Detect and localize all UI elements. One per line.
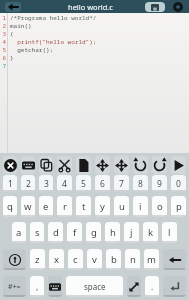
staticText: h bbox=[110, 226, 116, 239]
staticText: #+= bbox=[8, 282, 21, 292]
button[interactable] bbox=[171, 156, 186, 174]
button[interactable] bbox=[21, 156, 35, 174]
button[interactable] bbox=[152, 156, 167, 174]
staticText: k bbox=[148, 226, 154, 239]
staticText: 4 bbox=[0, 38, 6, 46]
button[interactable] bbox=[127, 276, 141, 297]
staticText: 7 bbox=[0, 62, 6, 70]
button[interactable]: 7 bbox=[114, 175, 129, 192]
staticText: g bbox=[91, 226, 97, 239]
button[interactable] bbox=[145, 2, 165, 12]
button[interactable]: 3 bbox=[39, 175, 53, 192]
button[interactable] bbox=[76, 156, 91, 174]
button[interactable]: j bbox=[124, 222, 139, 243]
button[interactable]: t bbox=[76, 196, 91, 217]
button[interactable]: u bbox=[114, 196, 129, 217]
staticText: 1 bbox=[0, 14, 6, 22]
staticText: m bbox=[147, 253, 156, 266]
staticText: q bbox=[7, 200, 13, 213]
button[interactable]: 8 bbox=[133, 175, 148, 192]
button[interactable]: i bbox=[133, 196, 148, 217]
button[interactable] bbox=[39, 156, 53, 174]
staticText: b bbox=[111, 253, 117, 266]
staticText: , bbox=[36, 281, 39, 293]
staticText: 3 bbox=[44, 178, 49, 190]
staticText: r bbox=[63, 200, 67, 213]
button[interactable] bbox=[133, 156, 148, 174]
staticText: y bbox=[100, 200, 105, 213]
staticText: t bbox=[82, 200, 86, 213]
staticText: 4 bbox=[62, 178, 67, 190]
button[interactable]: n bbox=[125, 249, 140, 270]
button[interactable]: l bbox=[162, 222, 177, 243]
button[interactable] bbox=[114, 156, 129, 174]
button[interactable] bbox=[3, 249, 26, 270]
button[interactable] bbox=[95, 156, 110, 174]
staticText: j bbox=[130, 226, 133, 239]
button[interactable]: space bbox=[66, 276, 123, 297]
staticText: u bbox=[119, 200, 125, 213]
button[interactable]: h bbox=[105, 222, 120, 243]
staticText: n bbox=[130, 253, 136, 266]
staticText: 2 bbox=[26, 178, 31, 190]
staticText: getchar(); bbox=[10, 46, 54, 54]
button[interactable]: 4 bbox=[57, 175, 72, 192]
button[interactable]: d bbox=[48, 222, 63, 243]
button[interactable]: . bbox=[145, 276, 159, 297]
staticText: } bbox=[10, 54, 14, 62]
button[interactable] bbox=[163, 276, 186, 297]
button[interactable]: #+= bbox=[3, 276, 26, 297]
button[interactable]: v bbox=[87, 249, 102, 270]
button[interactable]: , bbox=[30, 276, 44, 297]
button[interactable] bbox=[173, 2, 183, 12]
staticText: p bbox=[176, 200, 182, 213]
staticText: s bbox=[35, 226, 40, 239]
button[interactable]: p bbox=[171, 196, 186, 217]
button[interactable]: a bbox=[12, 222, 26, 243]
staticText: o bbox=[157, 200, 163, 213]
button[interactable] bbox=[57, 156, 72, 174]
staticText: e bbox=[43, 200, 49, 213]
button[interactable]: m bbox=[144, 249, 159, 270]
button[interactable]: e bbox=[39, 196, 53, 217]
staticText: 1 bbox=[8, 178, 13, 190]
button[interactable]: 5 bbox=[76, 175, 91, 192]
button[interactable]: s bbox=[30, 222, 44, 243]
button[interactable]: 0 bbox=[171, 175, 186, 192]
staticText: d bbox=[53, 226, 59, 239]
button[interactable] bbox=[48, 276, 62, 297]
staticText: c bbox=[73, 253, 78, 266]
button[interactable]: k bbox=[143, 222, 158, 243]
button[interactable]: 9 bbox=[152, 175, 167, 192]
staticText: 7 bbox=[119, 178, 124, 190]
button[interactable]: g bbox=[86, 222, 101, 243]
staticText: 6 bbox=[0, 54, 6, 62]
staticText: 3 bbox=[0, 30, 6, 38]
button[interactable]: b bbox=[106, 249, 121, 270]
staticText: f bbox=[73, 226, 77, 239]
staticText: { bbox=[10, 30, 14, 38]
button[interactable]: y bbox=[95, 196, 110, 217]
staticText: x bbox=[54, 253, 60, 266]
button[interactable]: o bbox=[152, 196, 167, 217]
button[interactable] bbox=[5, 2, 21, 12]
button[interactable]: c bbox=[68, 249, 83, 270]
staticText: v bbox=[92, 253, 97, 266]
staticText: 6 bbox=[100, 178, 105, 190]
button[interactable]: 1 bbox=[3, 175, 17, 192]
button[interactable]: 2 bbox=[21, 175, 35, 192]
staticText: l bbox=[168, 226, 171, 239]
button[interactable] bbox=[163, 249, 186, 270]
staticText: 9 bbox=[157, 178, 162, 190]
staticText: /*Programa hello world*/ bbox=[10, 14, 97, 22]
button[interactable]: x bbox=[49, 249, 64, 270]
button[interactable] bbox=[3, 156, 17, 174]
button[interactable]: 6 bbox=[95, 175, 110, 192]
button[interactable]: w bbox=[21, 196, 35, 217]
button[interactable]: z bbox=[30, 249, 45, 270]
staticText: 5 bbox=[81, 178, 86, 190]
button[interactable]: f bbox=[67, 222, 82, 243]
button[interactable]: q bbox=[3, 196, 17, 217]
staticText: main() bbox=[10, 22, 32, 30]
button[interactable]: r bbox=[57, 196, 72, 217]
